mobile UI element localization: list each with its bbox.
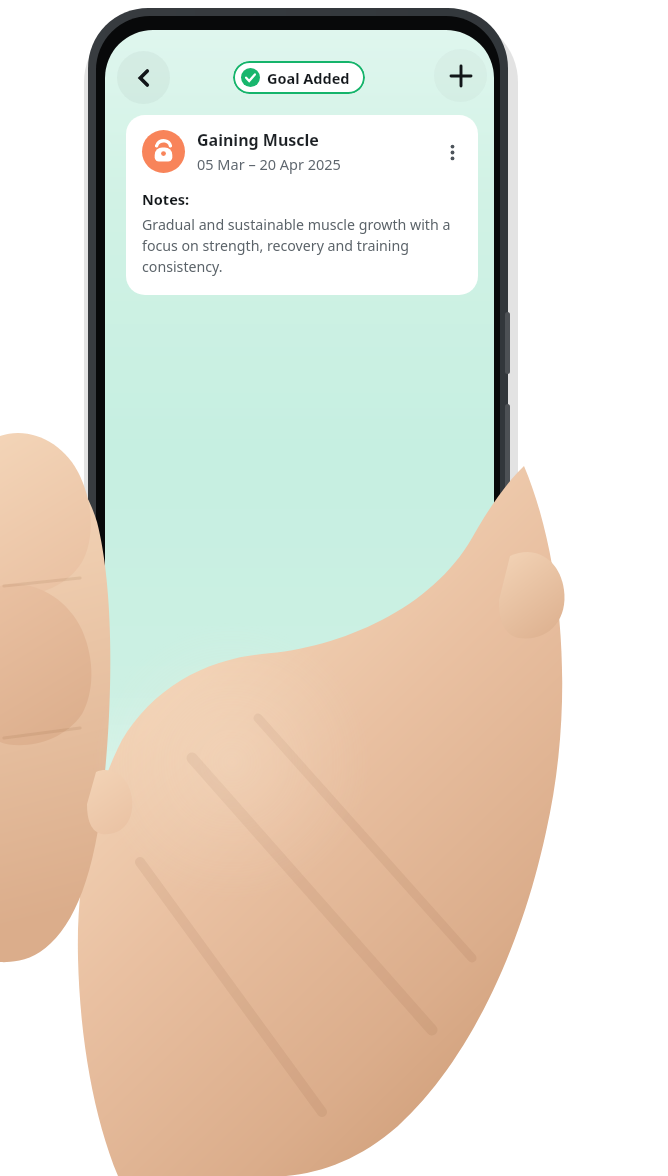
button[interactable]: Gaining Muscle — [126, 115, 478, 295]
staticText: Gradual and sustainable muscle growth wi… — [142, 215, 465, 277]
staticText: 05 Mar – 20 Apr 2025 — [197, 154, 341, 174]
button[interactable]: Goal Added — [233, 61, 365, 94]
staticText: Gaining Muscle — [197, 129, 319, 151]
button[interactable]: Back — [117, 51, 170, 104]
button[interactable]: More options — [439, 139, 465, 165]
button[interactable]: Add goal — [434, 49, 487, 102]
staticText: Notes: — [142, 189, 190, 209]
staticText: Goal Added — [267, 68, 350, 88]
button[interactable]: Discuss with Neura — [125, 770, 484, 819]
staticText: Discuss with Neura — [231, 784, 379, 805]
